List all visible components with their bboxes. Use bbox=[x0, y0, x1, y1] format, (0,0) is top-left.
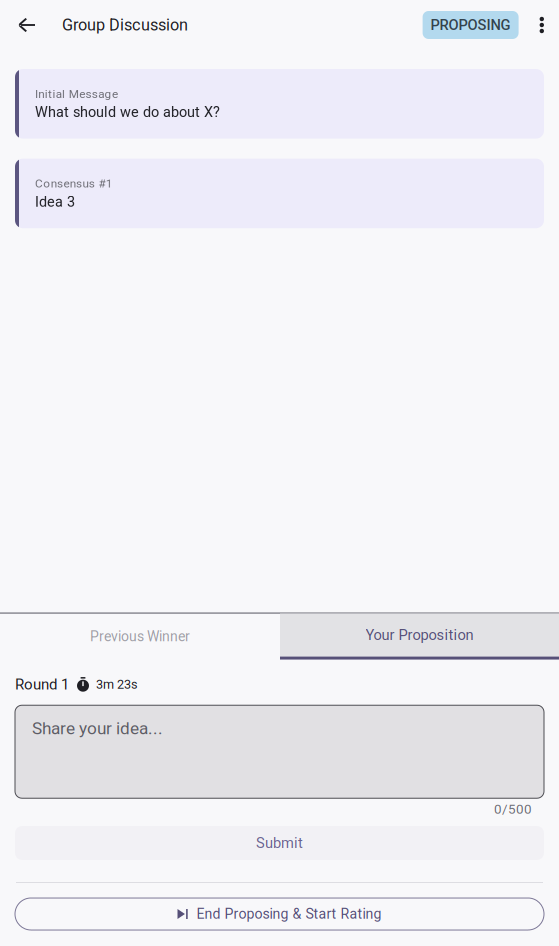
staticText: Share your idea... bbox=[32, 718, 163, 738]
staticText: 3m 23s bbox=[96, 677, 138, 692]
staticText: PROPOSING bbox=[431, 16, 511, 34]
staticText: Group Discussion bbox=[62, 15, 188, 35]
staticText: Round 1 bbox=[15, 676, 69, 693]
button[interactable]: Previous Winner bbox=[0, 614, 280, 660]
staticText: Idea 3 bbox=[35, 193, 75, 210]
staticText: Consensus #1 bbox=[35, 177, 113, 190]
staticText: 0/500 bbox=[494, 801, 532, 817]
button[interactable]: More options bbox=[519, 0, 559, 50]
button[interactable]: Submit bbox=[15, 826, 544, 860]
button[interactable]: Your Proposition bbox=[280, 614, 559, 660]
staticText: End Proposing & Start Rating bbox=[196, 906, 381, 922]
staticText: Your Proposition bbox=[365, 626, 473, 644]
button[interactable]: Back bbox=[0, 0, 40, 50]
button[interactable]: PROPOSING bbox=[423, 11, 519, 39]
staticText: Submit bbox=[256, 834, 303, 852]
staticText: Initial Message bbox=[35, 87, 118, 101]
staticText: Previous Winner bbox=[90, 628, 190, 645]
staticText: What should we do about X? bbox=[35, 104, 220, 121]
button[interactable]: End Proposing & Start Rating bbox=[15, 898, 544, 930]
